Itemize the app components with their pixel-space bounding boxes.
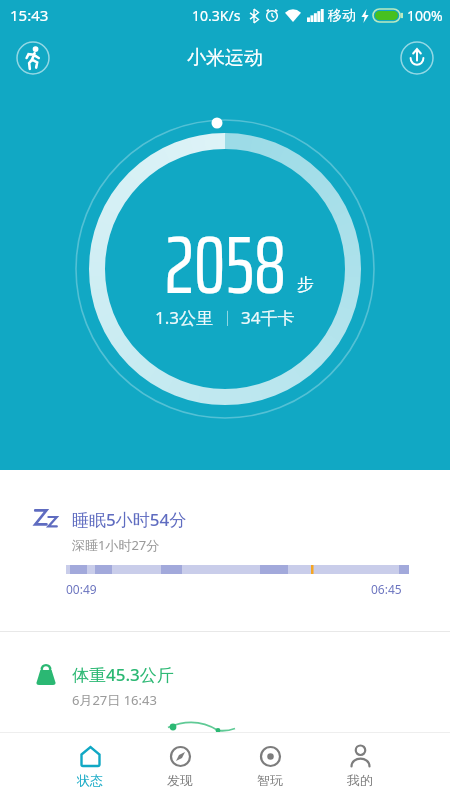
staticText: 10.3K/s xyxy=(192,6,241,25)
staticText: 移动 xyxy=(328,7,356,25)
button[interactable]: 发现 xyxy=(135,733,225,800)
staticText: 小米运动 xyxy=(187,46,263,70)
button[interactable]: 状态 xyxy=(45,733,135,800)
button[interactable]: 我的 xyxy=(315,733,405,800)
button[interactable]: 智玩 xyxy=(225,733,315,800)
staticText: 15:43 xyxy=(10,5,49,25)
button[interactable] xyxy=(401,42,433,74)
staticText: 深睡1小时27分 xyxy=(72,536,160,554)
button[interactable]: 睡眠5小时54分 xyxy=(0,470,450,631)
button[interactable]: 体重45.3公斤 xyxy=(0,632,450,732)
staticText: 步 xyxy=(297,274,314,295)
staticText: 我的 xyxy=(347,772,373,788)
staticText: 智玩 xyxy=(257,772,283,788)
button[interactable] xyxy=(17,42,49,74)
staticText: 发现 xyxy=(167,772,193,788)
staticText: 00:49 xyxy=(66,581,97,597)
staticText: 6月27日 16:43 xyxy=(72,691,157,709)
staticText: 06:45 xyxy=(371,581,402,597)
staticText: 100% xyxy=(407,6,443,25)
staticText: ｜ xyxy=(220,308,235,327)
staticText: 体重45.3公斤 xyxy=(72,663,174,686)
staticText: 状态 xyxy=(77,772,103,788)
staticText: 睡眠5小时54分 xyxy=(72,508,187,531)
staticText: 1.3公里 xyxy=(155,306,214,329)
staticText: 2058 xyxy=(165,202,286,328)
staticText: 34千卡 xyxy=(241,306,295,329)
